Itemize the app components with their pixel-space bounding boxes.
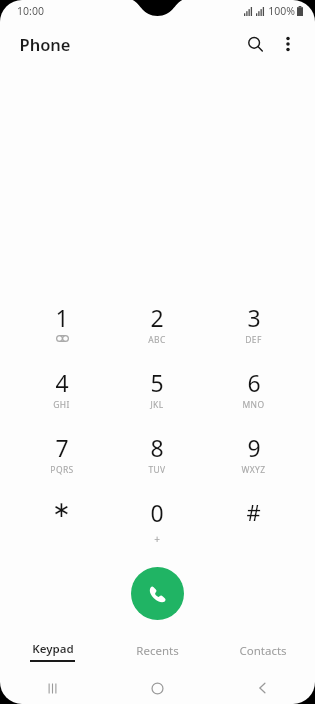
- staticText: 2: [150, 302, 164, 333]
- staticText: ABC: [148, 334, 166, 346]
- staticText: JKL: [150, 399, 164, 411]
- staticText: PQRS: [50, 464, 74, 476]
- button[interactable]: Back: [210, 672, 315, 704]
- staticText: 3: [247, 302, 261, 333]
- button[interactable]: 9: [205, 424, 301, 489]
- staticText: 7: [55, 432, 69, 463]
- staticText: 8: [150, 432, 164, 463]
- button[interactable]: Contacts: [210, 638, 315, 664]
- button[interactable]: ∗: [14, 489, 109, 554]
- button[interactable]: 0: [109, 489, 205, 554]
- button[interactable]: Call: [131, 567, 184, 620]
- staticText: 6: [247, 367, 261, 398]
- staticText: WXYZ: [241, 464, 266, 476]
- staticText: GHI: [53, 399, 70, 411]
- button[interactable]: Home: [105, 672, 210, 704]
- button[interactable]: 1: [14, 294, 109, 359]
- button[interactable]: Search: [238, 27, 272, 61]
- staticText: 4: [55, 367, 69, 398]
- button[interactable]: 8: [109, 424, 205, 489]
- staticText: 5: [150, 367, 164, 398]
- button[interactable]: More options: [272, 28, 304, 60]
- staticText: Keypad: [32, 641, 74, 657]
- staticText: +: [154, 532, 160, 546]
- staticText: 9: [247, 432, 261, 463]
- staticText: 10:00: [17, 4, 44, 18]
- staticText: DEF: [245, 334, 262, 346]
- staticText: 100%: [268, 4, 295, 18]
- staticText: #: [246, 497, 261, 527]
- button[interactable]: Keypad: [0, 638, 105, 664]
- staticText: 0: [150, 497, 164, 528]
- staticText: Contacts: [239, 643, 287, 659]
- button[interactable]: 4: [14, 359, 109, 424]
- staticText: MNO: [242, 399, 265, 411]
- button[interactable]: #: [205, 489, 301, 554]
- staticText: TUV: [148, 464, 166, 476]
- button[interactable]: 5: [109, 359, 205, 424]
- button[interactable]: 6: [205, 359, 301, 424]
- button[interactable]: 7: [14, 424, 109, 489]
- staticText: ∗: [52, 497, 71, 523]
- staticText: Recents: [136, 643, 179, 659]
- staticText: Phone: [19, 33, 71, 55]
- button[interactable]: Recents: [0, 672, 105, 704]
- button[interactable]: Recents: [105, 638, 210, 664]
- button[interactable]: 3: [205, 294, 301, 359]
- button[interactable]: 2: [109, 294, 205, 359]
- staticText: 1: [55, 302, 69, 333]
